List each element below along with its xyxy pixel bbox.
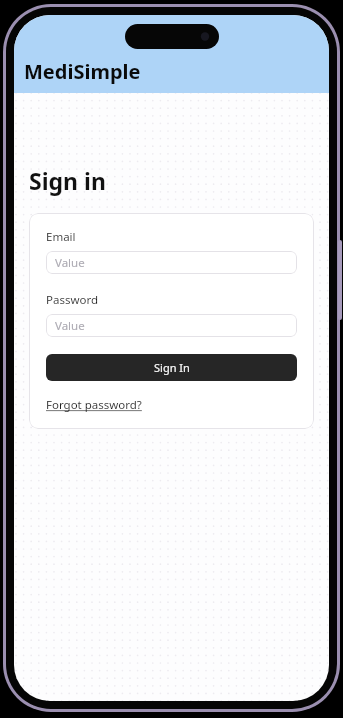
button[interactable]: Sign In: [46, 354, 297, 381]
staticText: Value: [55, 318, 85, 334]
button[interactable]: Forgot password?: [46, 397, 142, 413]
staticText: Value: [55, 255, 85, 271]
staticText: Sign in: [29, 165, 106, 196]
button[interactable]: Value: [46, 314, 297, 337]
button[interactable]: Value: [46, 251, 297, 274]
staticText: Email: [46, 229, 76, 245]
staticText: Forgot password?: [46, 397, 142, 413]
staticText: Sign In: [154, 360, 190, 375]
staticText: MediSimple: [24, 58, 141, 85]
staticText: Password: [46, 292, 99, 308]
